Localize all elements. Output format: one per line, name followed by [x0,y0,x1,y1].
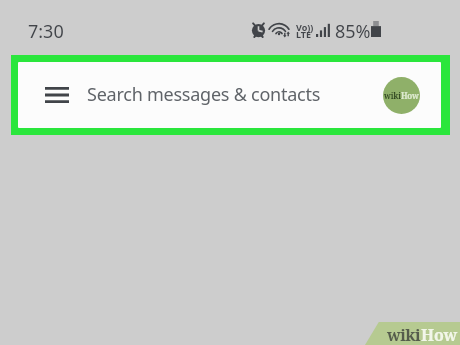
staticText: LTE [296,28,312,40]
staticText: wiki [387,324,421,345]
button[interactable]: Open navigation menu [38,80,75,109]
staticText: wiki [384,90,401,101]
button[interactable]: Open navigation menu [18,62,441,128]
staticText: How [421,324,458,345]
button[interactable]: Account [383,77,420,114]
staticText: Search messages & contacts [87,82,321,107]
staticText: Vo)) [296,21,314,33]
staticText: 85% [335,19,371,44]
staticText: How [401,90,419,101]
staticText: 7:30 [28,19,64,44]
